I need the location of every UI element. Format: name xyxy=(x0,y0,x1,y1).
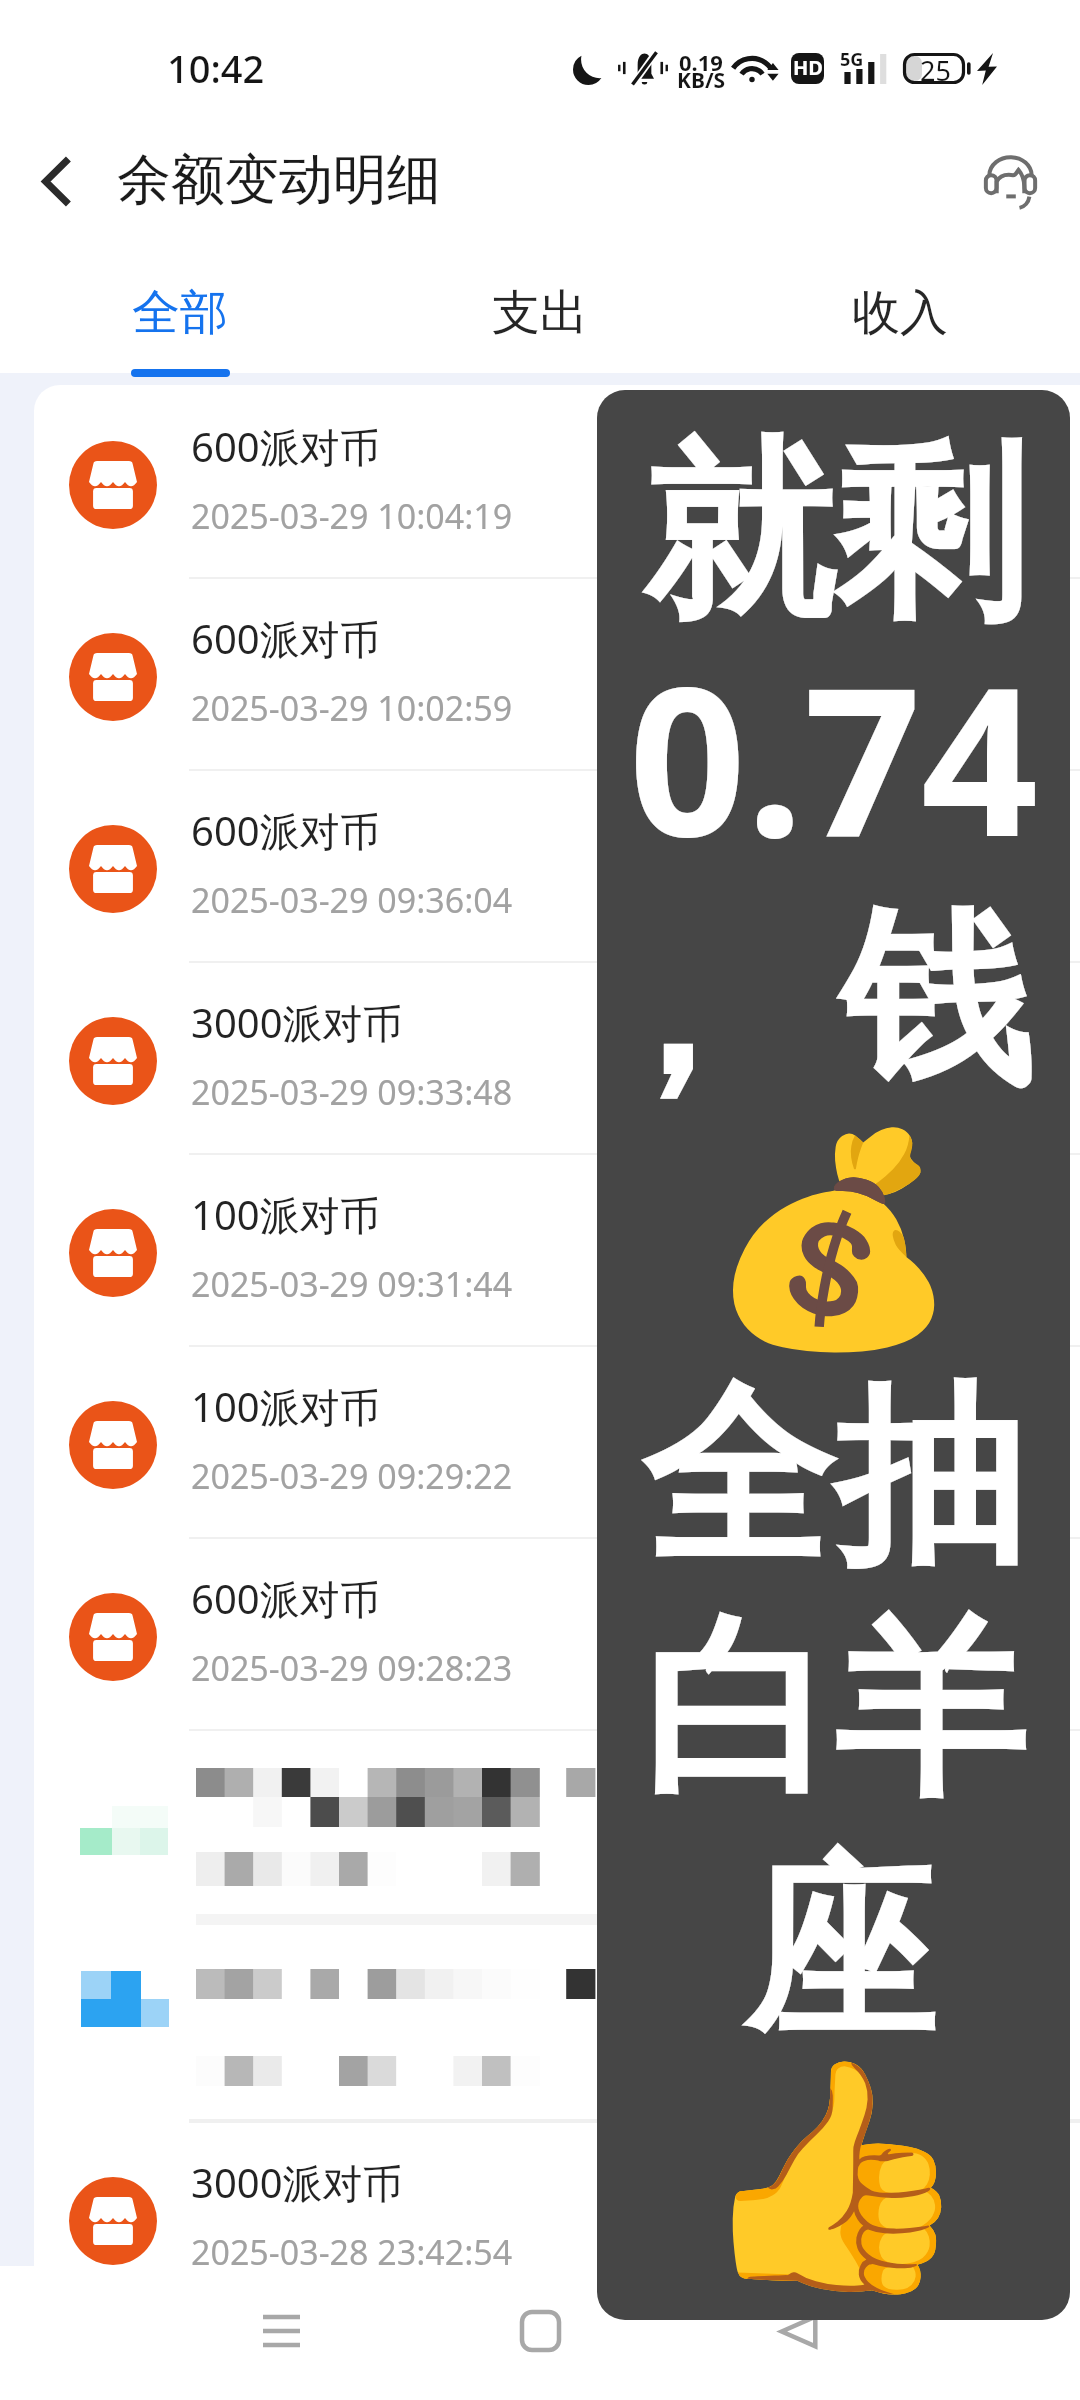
staticText: 3000派对币 xyxy=(191,2155,403,2210)
button[interactable]: 100派对币 xyxy=(34,1345,1080,1537)
button[interactable]: 600派对币 xyxy=(34,577,1080,769)
staticText: HD xyxy=(793,54,823,81)
button[interactable]: 就剩 xyxy=(597,390,1070,2320)
button[interactable]: 收入 xyxy=(720,255,1080,373)
button[interactable] xyxy=(34,1925,1080,2121)
staticText: 600派对币 xyxy=(191,611,380,666)
staticText: 支出 xyxy=(492,283,588,343)
staticText: KB/S xyxy=(677,66,726,95)
staticText: 10:42 xyxy=(167,42,265,94)
staticText: 2025-03-29 09:28:23 xyxy=(191,1645,513,1691)
button[interactable]: 支出 xyxy=(360,255,720,373)
button[interactable] xyxy=(34,1729,1080,1925)
staticText: 全部 xyxy=(132,283,228,343)
staticText: 钱 xyxy=(840,880,1032,1122)
staticText: 100派对币 xyxy=(191,1187,380,1242)
button[interactable]: 600派对币 xyxy=(34,1537,1080,1729)
staticText: 600派对币 xyxy=(191,1571,380,1626)
staticText: 0.74 xyxy=(597,617,1070,896)
button[interactable]: 全部 xyxy=(0,255,360,373)
button[interactable]: 返回 xyxy=(14,138,100,224)
staticText: 0.19 xyxy=(679,47,723,77)
button[interactable]: 返回 xyxy=(738,2276,858,2386)
staticText: 3000派对币 xyxy=(191,995,403,1050)
staticText: 25 xyxy=(920,52,951,83)
staticText: 座 xyxy=(602,1830,1070,2072)
staticText: ， xyxy=(597,889,769,1131)
button[interactable]: 客服 xyxy=(957,135,1064,225)
staticText: 收入 xyxy=(852,283,948,343)
staticText: 2025-03-28 23:42:54 xyxy=(191,2229,513,2266)
staticText: 💰 xyxy=(597,1120,1070,1360)
staticText: 就剩 xyxy=(597,413,1070,655)
staticText: 2025-03-29 10:02:59 xyxy=(191,685,513,731)
staticText: 600派对币 xyxy=(191,419,380,474)
staticText: 白羊 xyxy=(597,1590,1070,1832)
staticText: 2025-03-29 09:36:04 xyxy=(191,877,513,923)
staticText: 2025-03-29 09:33:48 xyxy=(191,1069,513,1115)
staticText: 👍 xyxy=(597,2045,1070,2308)
button[interactable]: 主屏幕 xyxy=(480,2276,600,2386)
staticText: 余额变动明细 xyxy=(117,146,441,214)
button[interactable]: 600派对币 xyxy=(34,385,1080,577)
staticText: 100派对币 xyxy=(191,1379,380,1434)
button[interactable]: 600派对币 xyxy=(34,769,1080,961)
staticText: 600派对币 xyxy=(191,803,380,858)
button[interactable]: 100派对币 xyxy=(34,1153,1080,1345)
staticText: 2025-03-29 10:04:19 xyxy=(191,493,513,539)
staticText: 全抽 xyxy=(597,1358,1070,1600)
button[interactable]: 3000派对币 xyxy=(34,2121,1080,2266)
staticText: 2025-03-29 09:31:44 xyxy=(191,1261,513,1307)
staticText: 5G xyxy=(840,47,864,72)
staticText: 2025-03-29 09:29:22 xyxy=(191,1453,513,1499)
button[interactable]: 最近任务 xyxy=(221,2276,341,2386)
button[interactable]: 3000派对币 xyxy=(34,961,1080,1153)
